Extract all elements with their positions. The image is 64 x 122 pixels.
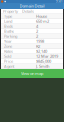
- staticText: Details: [22, 9, 34, 14]
- staticText: Baths: [4, 29, 14, 34]
- button[interactable]: Agent: [1, 64, 63, 69]
- staticText: Price: [4, 59, 13, 64]
- staticText: 1998: [36, 39, 44, 44]
- button[interactable]: Parking: [1, 34, 63, 39]
- staticText: Beds: [4, 24, 13, 29]
- staticText: House: [36, 14, 47, 19]
- staticText: Sold: [4, 54, 11, 59]
- staticText: Property: [3, 9, 18, 14]
- button[interactable]: Type: [1, 14, 63, 19]
- staticText: J. Smith: [36, 64, 49, 69]
- staticText: View on map: [21, 71, 43, 76]
- staticText: $2,140: [36, 49, 47, 54]
- staticText: Zone: [4, 44, 12, 49]
- staticText: Domain Detail: [19, 3, 44, 9]
- staticText: 650 m2: [36, 19, 49, 24]
- button[interactable]: Land: [1, 19, 63, 24]
- button[interactable]: Year: [1, 39, 63, 44]
- staticText: Rates: [4, 49, 13, 54]
- button[interactable]: Rates: [1, 49, 63, 54]
- button[interactable]: View on map: [0, 69, 64, 78]
- button[interactable]: Property: [1, 9, 63, 14]
- staticText: 2: [36, 34, 38, 39]
- button[interactable]: Price: [1, 59, 63, 64]
- button[interactable]: Baths: [1, 29, 63, 34]
- staticText: Parking: [4, 34, 17, 39]
- staticText: 12 Mar 2019: [36, 54, 58, 59]
- staticText: Type: [4, 14, 12, 19]
- staticText: Year: [4, 39, 12, 44]
- button[interactable]: Zone: [1, 44, 63, 49]
- staticText: Land: [4, 19, 12, 24]
- staticText: 9:41: [56, 0, 63, 3]
- staticText: R2: [36, 44, 40, 49]
- button[interactable]: Beds: [1, 24, 63, 29]
- staticText: 4: [36, 24, 38, 29]
- staticText: Agent: [4, 64, 14, 69]
- staticText: $845,000: [36, 59, 51, 64]
- staticText: 2: [36, 29, 38, 34]
- button[interactable]: Sold: [1, 54, 63, 59]
